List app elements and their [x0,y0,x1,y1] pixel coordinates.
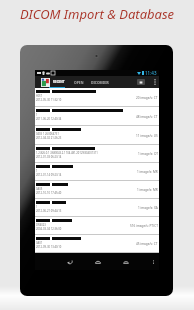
staticText: 0403 1 260064731 [36,132,59,136]
staticText: 11 image/s: US [136,134,158,138]
button[interactable]: 1.2.826.0.1.3680043.2.1104.481.201293040… [35,145,159,163]
button[interactable]: RECENT [53,76,65,88]
button[interactable]: HIST [35,88,159,107]
button[interactable]: OPEN [74,76,84,88]
button[interactable]: 1 [35,107,159,126]
button[interactable]: More options [151,257,156,267]
button[interactable]: Import [137,79,145,85]
staticText: 45 image/s: CT [136,242,158,246]
staticText: RECENT [53,80,65,84]
staticText: DICOMDIR [91,80,109,85]
staticText: 2012-04-02 21:26:23 [36,136,62,140]
staticText: 516 image/s: PT/CT [130,224,158,228]
button[interactable]: Recents [119,255,132,268]
staticText: 20 image/s: CT [136,96,158,100]
button[interactable]: 1 [35,163,159,181]
staticText: 1 [36,169,38,173]
staticText: 11:43 [145,70,157,76]
staticText: OPEN [74,80,84,85]
button[interactable]: 0403 1 260064731 [35,126,159,145]
button[interactable]: DR4023 [35,217,159,235]
staticText: 2012-09-30 13:40:10 [36,245,62,249]
staticText: 2012-01-03 06:23:14 [36,155,62,159]
button[interactable]: Home [91,255,104,268]
staticText: 1 image/s: XA [138,206,158,210]
staticText: 1 image/s: MR [137,170,158,174]
staticText: 1 image/s: OT [138,152,158,156]
staticText: 0A05 [36,187,43,191]
staticText: 2012-10-10 17:45:40 [36,191,62,195]
staticText: DICOM Import & Database [0,5,194,23]
button[interactable]: 0A05 [35,181,159,199]
staticText: 48 image/s: CT [136,115,158,119]
button[interactable]: Back [63,255,76,268]
staticText: 0A01 [36,241,43,245]
staticText: 2012-06-21 09:44:13 [36,209,62,213]
staticText: 1.2.826.0.1.3680043.2.1104.481.201293040… [36,151,98,155]
button[interactable]: More options [151,76,158,88]
button[interactable]: 1 [35,199,159,217]
button[interactable]: 0A01 [35,235,159,253]
button[interactable]: DICOMDIR [91,76,109,88]
staticText: 2012-01-14 09:23:14 [36,173,62,177]
staticText: HIST [36,94,42,98]
staticText: DR4023 [36,223,46,227]
staticText: 1 [36,113,38,117]
staticText: 1 image/s: MR [137,188,158,192]
staticText: 2012-05-30 11:32:10 [36,98,62,102]
staticText: 1 [36,205,38,209]
staticText: 2011-06-20 12:40:34 [36,117,62,121]
staticText: 2004-03-04 12:36:00 [36,227,62,231]
